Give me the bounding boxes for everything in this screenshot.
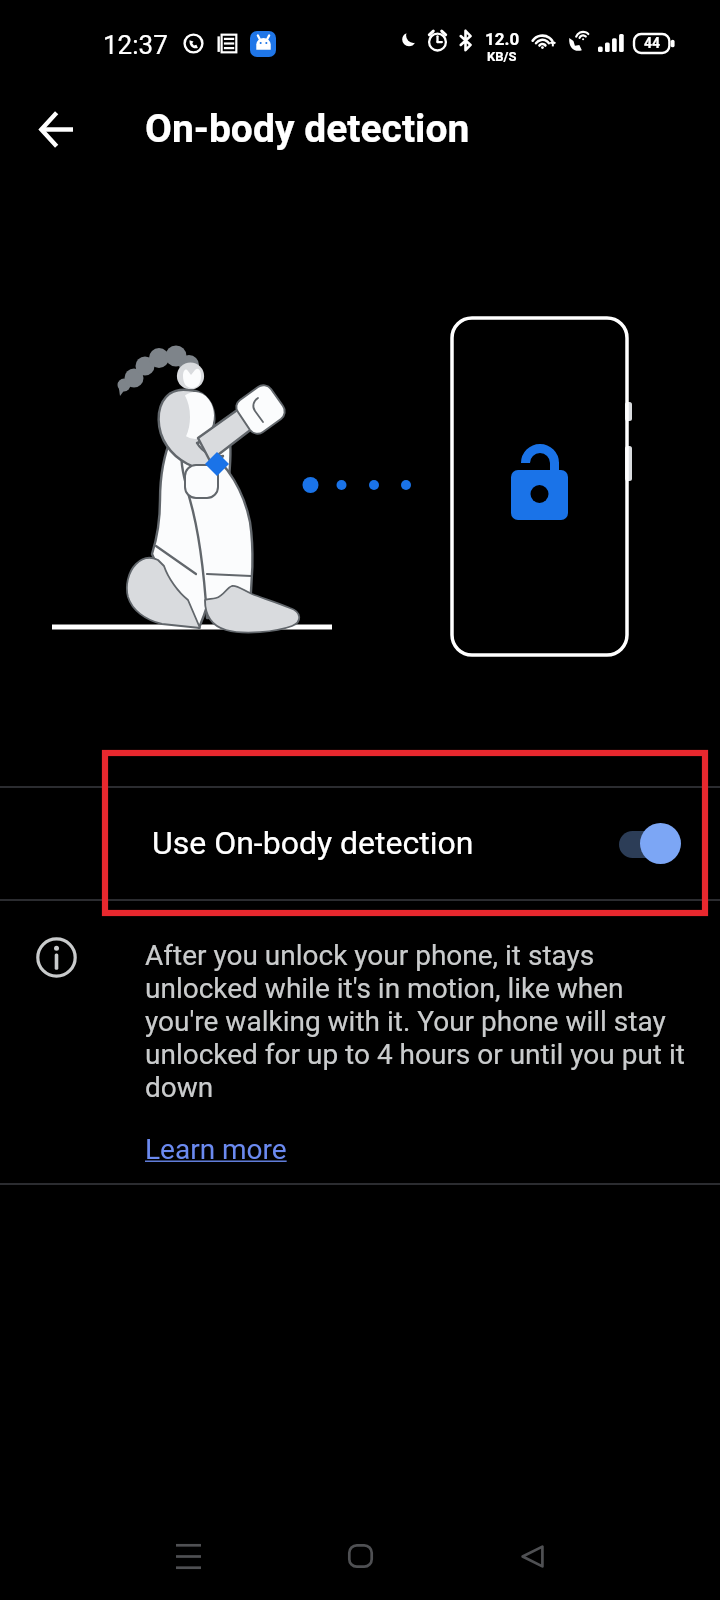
staticText: 44 [644,35,661,51]
button[interactable]: Recents [152,1520,224,1592]
button[interactable]: Back [24,97,88,161]
staticText: Use On-body detection [152,824,474,862]
button[interactable]: Use On-body detection [0,788,720,900]
staticText: 12.0 [485,29,519,49]
button[interactable]: Learn more [145,1133,287,1166]
staticText: On-body detection [145,106,470,152]
staticText: Learn more [145,1133,287,1166]
staticText: 12:37 [103,30,168,60]
button[interactable]: Home [324,1520,396,1592]
staticText: After you unlock your phone, it stays un… [145,939,693,1104]
button[interactable]: Back [496,1520,568,1592]
staticText: KB/S [487,49,517,64]
